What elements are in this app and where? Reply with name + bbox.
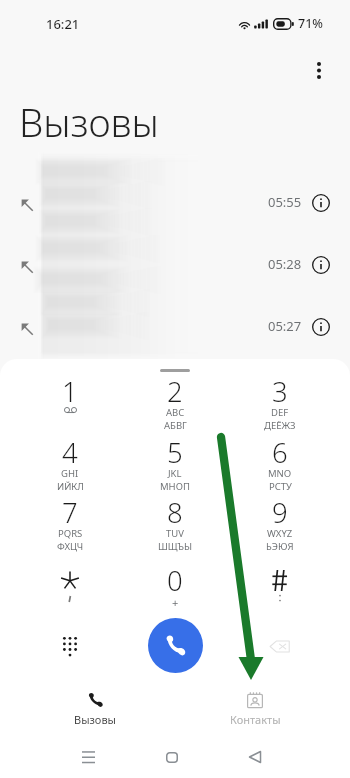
staticText: 3 [272, 373, 288, 410]
staticText: Вызовы [19, 96, 159, 148]
staticText: 2 [167, 373, 183, 410]
button[interactable]: Back [235, 737, 275, 777]
button[interactable] [0, 235, 350, 297]
staticText: 8 [167, 494, 183, 531]
staticText: 7 [62, 494, 78, 531]
button[interactable]: Hash [228, 556, 332, 614]
staticText: 5 [167, 434, 183, 471]
staticText: ДЕЁЖЗ [264, 419, 296, 432]
staticText: 6 [272, 434, 288, 471]
staticText: ИЙКЛ [57, 480, 84, 493]
button[interactable] [18, 426, 122, 483]
staticText: JKL [168, 467, 182, 480]
staticText: 16:21 [46, 15, 80, 33]
staticText: MNO [268, 467, 292, 480]
staticText: МНОП [160, 480, 190, 493]
staticText: ФХЦЧ [57, 540, 84, 553]
button[interactable] [18, 486, 122, 543]
button[interactable] [208, 680, 302, 730]
button[interactable] [0, 173, 350, 235]
staticText: ABC [166, 406, 185, 419]
staticText: 05:27 [268, 317, 302, 335]
button[interactable]: Keypad [47, 622, 93, 668]
button[interactable]: More options [299, 50, 339, 90]
button[interactable]: Call [148, 618, 203, 673]
staticText: ЬЭЮЯ [266, 540, 294, 553]
button[interactable]: Recent apps [68, 737, 108, 777]
staticText: + [172, 595, 179, 610]
staticText: Вызовы [74, 712, 116, 727]
staticText: 4 [62, 434, 78, 471]
staticText: 1 [62, 373, 78, 410]
button[interactable] [123, 365, 227, 422]
staticText: Контакты [230, 712, 281, 727]
staticText: РСТУ [269, 480, 292, 493]
staticText: 0 [167, 562, 183, 599]
button[interactable] [48, 680, 142, 730]
staticText: WXYZ [267, 527, 293, 540]
button[interactable]: Backspace [256, 622, 304, 670]
button[interactable] [0, 297, 350, 359]
button[interactable]: Call details [304, 310, 337, 343]
button[interactable] [123, 554, 227, 611]
staticText: TUV [166, 527, 184, 540]
button[interactable]: Star [18, 556, 122, 614]
button[interactable] [123, 486, 227, 543]
staticText: PQRS [58, 527, 83, 540]
staticText: АБВГ [164, 419, 187, 432]
button[interactable]: Home [152, 737, 192, 777]
staticText: GHI [61, 467, 79, 480]
staticText: DEF [271, 406, 289, 419]
button[interactable]: Call details [304, 248, 337, 281]
button[interactable] [123, 426, 227, 483]
button[interactable] [228, 486, 332, 543]
button[interactable] [228, 365, 332, 422]
button[interactable] [18, 365, 122, 422]
button[interactable]: Call details [304, 186, 337, 219]
staticText: 71% [298, 15, 323, 32]
button[interactable] [228, 426, 332, 483]
staticText: 9 [272, 494, 288, 531]
staticText: 05:55 [268, 193, 302, 211]
staticText: 05:28 [268, 255, 302, 273]
staticText: ШЩЪЫ [158, 540, 193, 553]
